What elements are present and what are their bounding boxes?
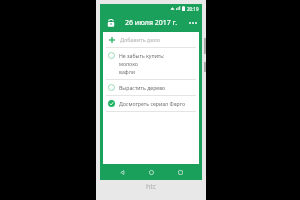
staticText: htc [146,182,157,192]
staticText: молоко [119,60,138,67]
staticText: 26 июля 2017 г. [125,18,178,28]
button[interactable]: Добавить дело [103,32,199,47]
button[interactable]: Вырастить дерево [103,80,199,96]
staticText: Досмотреть сериал Фарго [119,100,185,107]
staticText: Не забыть купить: [119,52,165,59]
button[interactable]: Back [115,165,129,179]
button[interactable]: Не забыть купить: [103,48,199,80]
button[interactable]: Home [144,165,158,179]
button[interactable]: Досмотреть сериал Фарго [103,96,199,112]
button[interactable]: Lock [104,16,118,30]
button[interactable]: Recents [173,165,187,179]
staticText: Вырастить дерево [119,84,166,91]
staticText: Добавить дело [120,36,160,43]
staticText: 20:19 [187,6,199,12]
staticText: вафли [119,68,135,75]
button[interactable]: More options [187,17,199,29]
